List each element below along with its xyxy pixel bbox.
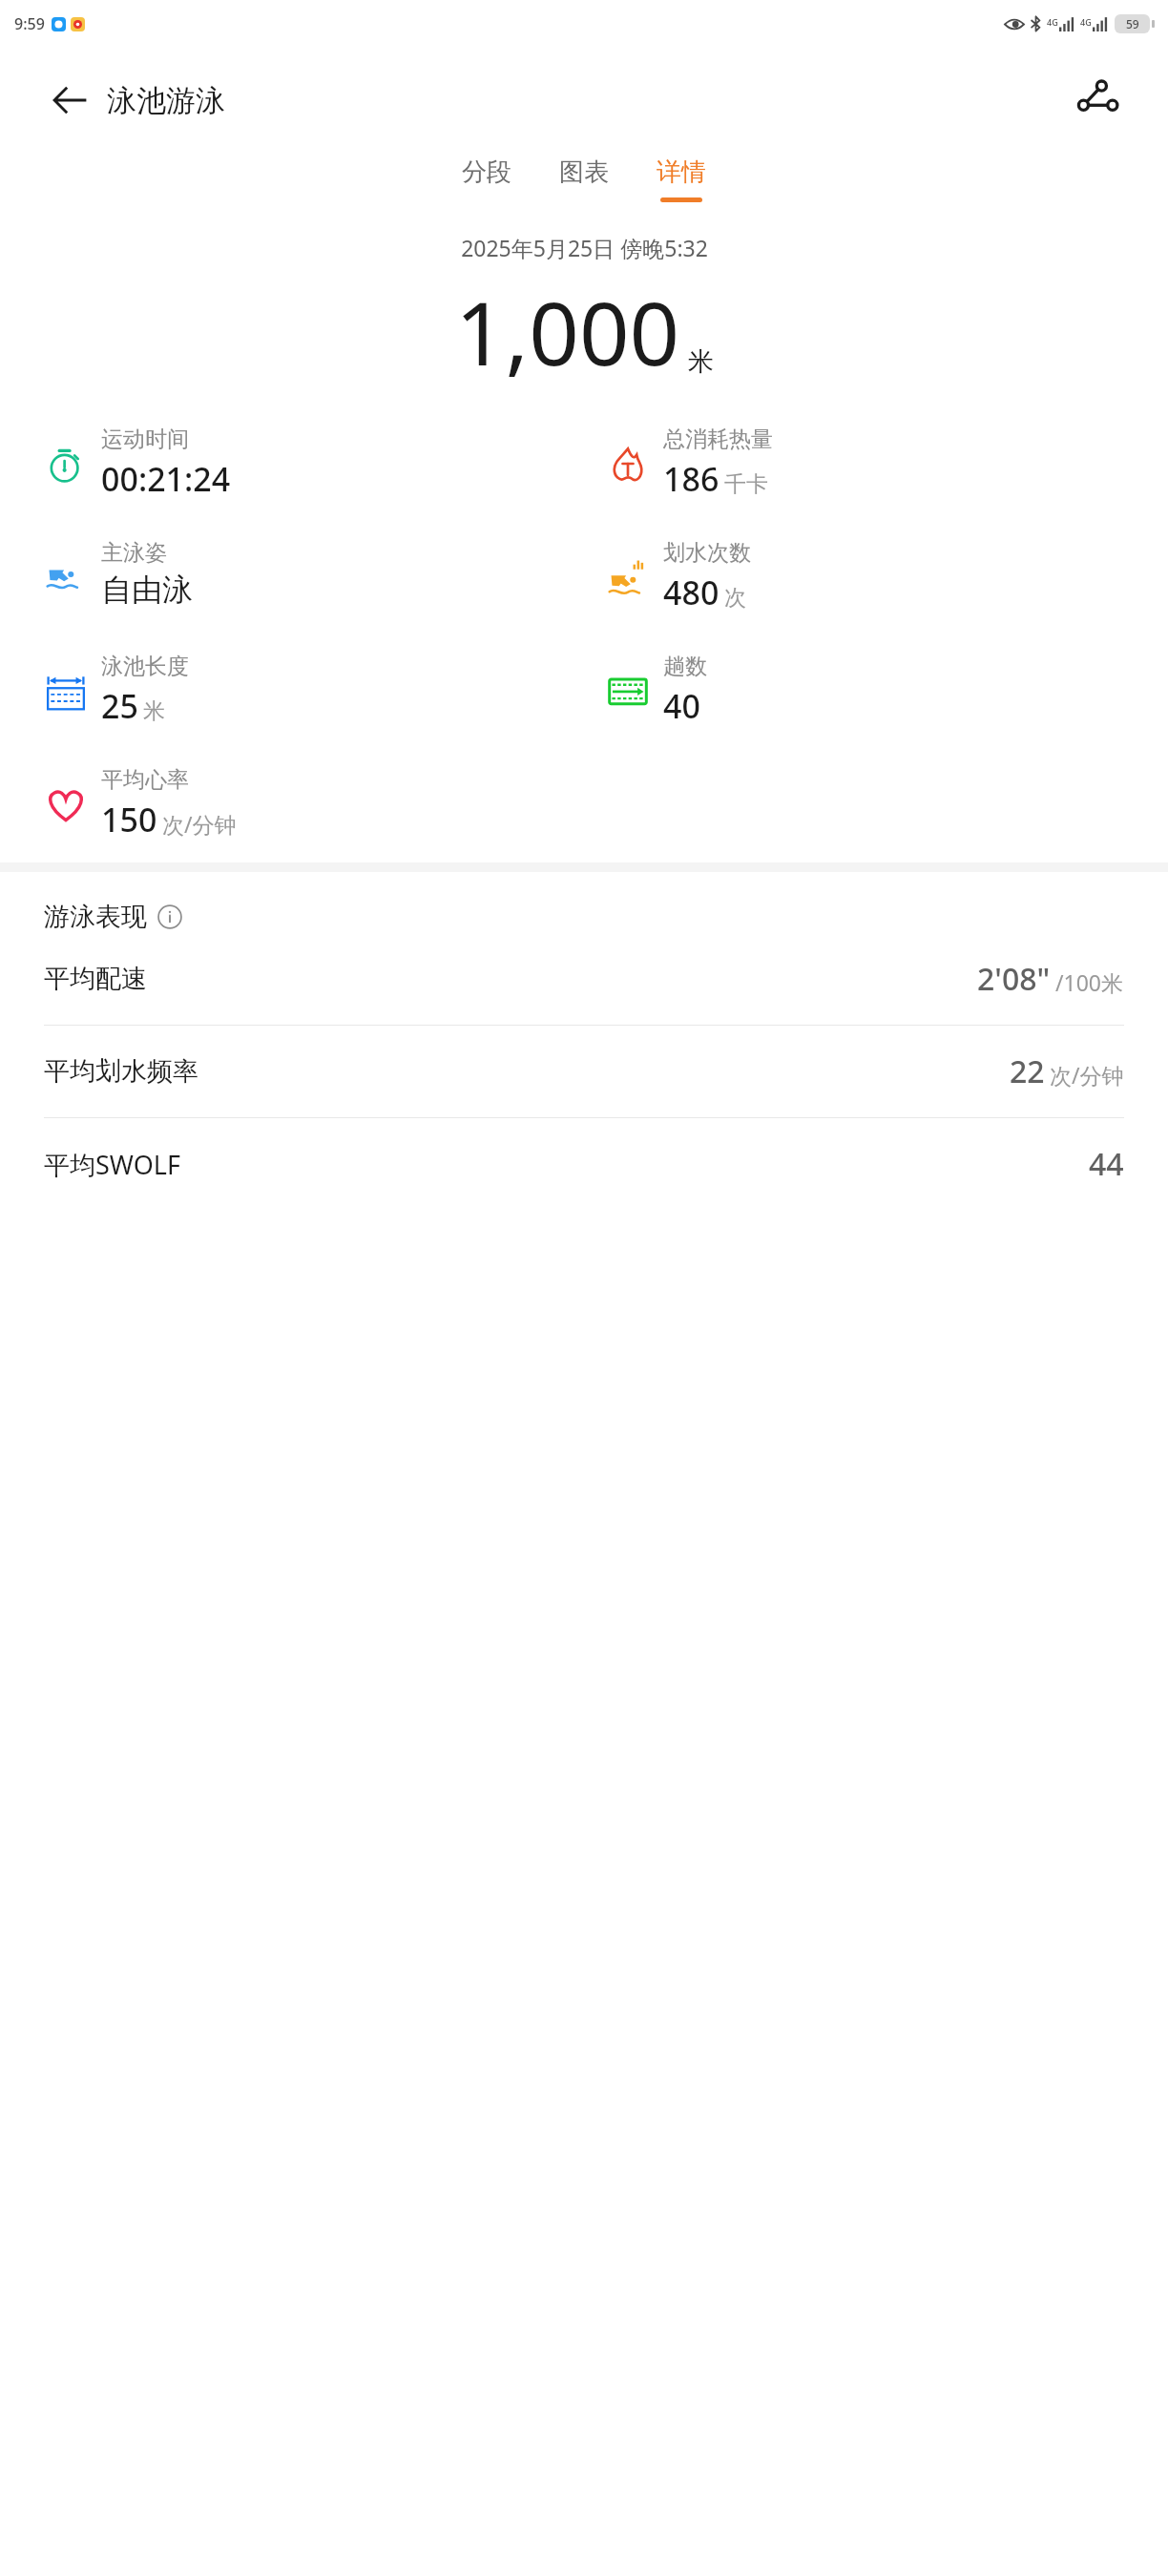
staticText: 44 xyxy=(1089,1143,1124,1185)
staticText: 次/分钟 xyxy=(162,809,237,839)
staticText: 40 xyxy=(663,684,700,728)
staticText: 趟数 xyxy=(663,653,707,680)
staticText: 泳池长度 xyxy=(101,653,189,680)
button[interactable]: 总消耗热量 xyxy=(606,426,773,501)
staticText: 米 xyxy=(143,697,165,725)
button[interactable]: 分段 xyxy=(454,153,519,206)
button[interactable]: Back xyxy=(44,74,95,126)
staticText: 150 xyxy=(101,798,157,841)
staticText: 自由泳 xyxy=(101,571,193,609)
button[interactable]: 平均SWOLF xyxy=(0,1118,1168,1210)
staticText: 平均划水频率 xyxy=(44,1055,198,1088)
button[interactable]: 平均心率 xyxy=(44,766,237,841)
staticText: 分段 xyxy=(462,156,511,188)
staticText: 次/分钟 xyxy=(1050,1060,1124,1090)
staticText: 运动时间 xyxy=(101,426,189,453)
staticText: 详情 xyxy=(657,156,706,188)
button[interactable]: 泳池长度 xyxy=(44,653,189,728)
staticText: 米 xyxy=(688,345,714,378)
button[interactable]: 划水次数 xyxy=(606,539,751,614)
button[interactable]: 图表 xyxy=(552,153,616,206)
staticText: 59 xyxy=(1126,16,1139,31)
button[interactable]: 主泳姿 xyxy=(44,539,193,609)
button[interactable]: 平均配速 xyxy=(0,933,1168,1025)
staticText: 平均SWOLF xyxy=(44,1147,180,1182)
staticText: 划水次数 xyxy=(663,539,751,567)
staticText: 总消耗热量 xyxy=(663,426,773,453)
button[interactable]: 游泳表现 xyxy=(44,901,1168,933)
staticText: 平均配速 xyxy=(44,963,147,995)
button[interactable]: 详情 xyxy=(649,153,714,206)
staticText: 22 xyxy=(1010,1050,1045,1092)
staticText: 480 xyxy=(663,571,720,614)
staticText: 主泳姿 xyxy=(101,539,167,567)
staticText: 186 xyxy=(663,457,720,501)
button[interactable]: 趟数 xyxy=(606,653,707,728)
staticText: 千卡 xyxy=(724,470,768,498)
staticText: 游泳表现 xyxy=(44,901,147,933)
staticText: 次 xyxy=(724,584,746,612)
staticText: 平均心率 xyxy=(101,766,189,794)
staticText: 9:59 xyxy=(14,13,45,34)
staticText: 00:21:24 xyxy=(101,457,231,501)
button[interactable]: 平均划水频率 xyxy=(0,1026,1168,1117)
staticText: 图表 xyxy=(559,156,609,188)
staticText: 2'08" xyxy=(977,958,1051,1000)
staticText: 泳池游泳 xyxy=(107,82,225,119)
button[interactable]: Share xyxy=(1069,72,1126,129)
button[interactable]: 运动时间 xyxy=(44,426,231,501)
staticText: /100米 xyxy=(1055,967,1124,997)
staticText: 2025年5月25日 傍晚5:32 xyxy=(461,233,708,262)
staticText: 4G xyxy=(1080,16,1092,28)
other: Info xyxy=(157,904,182,929)
staticText: 1,000 xyxy=(455,272,680,391)
staticText: 25 xyxy=(101,684,138,728)
staticText: 4G xyxy=(1047,16,1058,28)
